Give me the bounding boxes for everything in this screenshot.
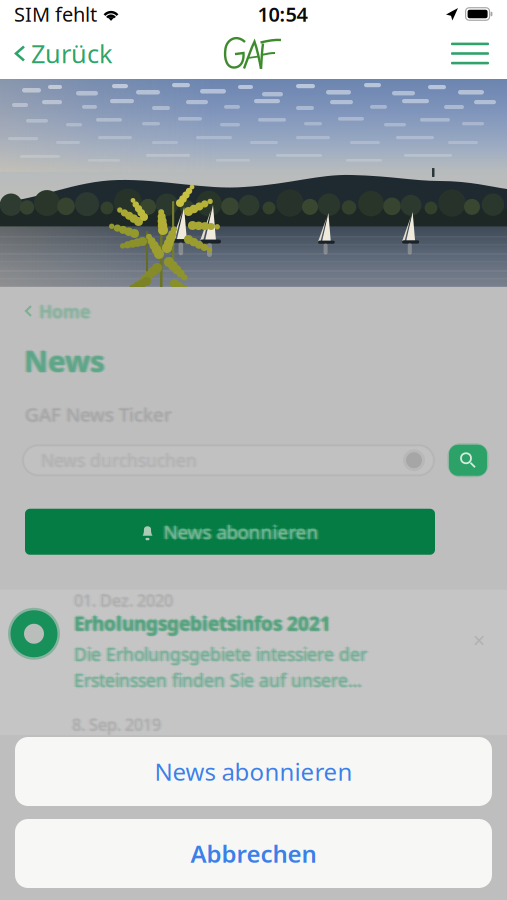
staticText: 8. Sep. 2019 xyxy=(72,713,161,734)
staticText: News durchsuchen xyxy=(41,450,197,473)
staticText: Die Erholungsgebiete intessiere der xyxy=(72,643,365,666)
staticText: Home xyxy=(38,299,89,322)
staticText: News xyxy=(24,341,105,380)
staticText: 8. Sep. 2019 xyxy=(71,713,160,734)
staticText: 01. Dez. 2020 xyxy=(75,591,174,612)
button[interactable]: Zurück xyxy=(0,28,127,79)
button[interactable]: Abbrechen xyxy=(15,819,492,888)
staticText: 01. Dez. 2020 xyxy=(73,589,172,610)
staticText: News abonnieren xyxy=(163,519,318,543)
staticText: News xyxy=(24,340,105,379)
staticText: Home xyxy=(41,300,92,323)
staticText: 8. Sep. 2019 xyxy=(73,715,162,736)
staticText: GAF News Ticker xyxy=(26,402,173,427)
staticText: Die Erholungsgebiete intessiere der xyxy=(74,644,367,667)
staticText: News durchsuchen xyxy=(42,449,198,472)
staticText: News xyxy=(22,341,103,380)
staticText: News abonnieren xyxy=(161,519,316,544)
staticText: Home xyxy=(38,300,89,323)
staticText: Erholungsgebietsinfos 2021 xyxy=(76,611,333,636)
staticText: 01. Dez. 2020 xyxy=(74,590,173,611)
staticText: Erholungsgebietsinfos 2021 xyxy=(75,611,332,636)
staticText: Ersteinssen finden Sie auf unsere… xyxy=(74,669,362,692)
staticText: News xyxy=(25,341,106,380)
staticText: News abonnieren xyxy=(163,519,318,544)
staticText: 8. Sep. 2019 xyxy=(72,714,161,735)
staticText: Erholungsgebietsinfos 2021 xyxy=(74,611,331,636)
staticText: Erholungsgebietsinfos 2021 xyxy=(72,611,329,636)
staticText: 01. Dez. 2020 xyxy=(73,590,172,611)
staticText: News xyxy=(23,341,104,380)
staticText: Zurück xyxy=(31,37,113,70)
staticText: GAF News Ticker xyxy=(27,402,174,427)
staticText: Die Erholungsgebiete intessiere der xyxy=(74,643,367,666)
staticText: 8. Sep. 2019 xyxy=(70,714,159,735)
staticText: GAF News Ticker xyxy=(25,401,172,426)
staticText: × xyxy=(473,626,485,654)
staticText: Ersteinssen finden Sie auf unsere… xyxy=(73,668,361,691)
staticText: News xyxy=(26,341,107,380)
staticText: News durchsuchen xyxy=(40,448,196,471)
staticText: GAF News Ticker xyxy=(24,402,171,427)
staticText: News durchsuchen xyxy=(39,449,195,472)
staticText: News durchsuchen xyxy=(40,449,196,472)
staticText: News xyxy=(25,342,106,381)
staticText: Die Erholungsgebiete intessiere der xyxy=(75,643,368,666)
staticText: News abonnieren xyxy=(163,521,318,545)
staticText: News abonnieren xyxy=(162,519,317,544)
staticText: 8. Sep. 2019 xyxy=(74,714,163,735)
staticText: 8. Sep. 2019 xyxy=(73,714,162,735)
staticText: Erholungsgebietsinfos 2021 xyxy=(73,610,330,635)
staticText: News xyxy=(24,342,105,381)
staticText: 8. Sep. 2019 xyxy=(72,715,161,736)
staticText: News abonnieren xyxy=(164,520,319,545)
staticText: News abonnieren xyxy=(165,519,320,544)
staticText: Ersteinssen finden Sie auf unsere… xyxy=(73,669,361,692)
staticText: 01. Dez. 2020 xyxy=(76,590,175,611)
staticText: SIM fehlt xyxy=(14,1,97,27)
staticText: News durchsuchen xyxy=(41,448,197,471)
staticText: News durchsuchen xyxy=(42,450,198,473)
staticText: Die Erholungsgebiete intessiere der xyxy=(73,642,366,665)
staticText: Ersteinssen finden Sie auf unsere… xyxy=(75,670,363,693)
staticText: Ersteinssen finden Sie auf unsere… xyxy=(74,670,362,693)
staticText: Home xyxy=(39,300,90,323)
staticText: Die Erholungsgebiete intessiere der xyxy=(73,643,366,666)
button[interactable]: Menü xyxy=(433,28,507,79)
staticText: Ersteinssen finden Sie auf unsere… xyxy=(74,668,362,691)
staticText: Die Erholungsgebiete intessiere der xyxy=(74,642,367,665)
staticText: News abonnieren xyxy=(166,519,321,544)
staticText: Erholungsgebietsinfos 2021 xyxy=(73,611,330,636)
staticText: Erholungsgebietsinfos 2021 xyxy=(74,612,331,637)
staticText: 01. Dez. 2020 xyxy=(74,589,173,610)
staticText: News abonnieren xyxy=(154,756,352,787)
staticText: News durchsuchen xyxy=(41,449,197,472)
staticText: News durchsuchen xyxy=(43,449,199,472)
staticText: Home xyxy=(40,300,91,323)
staticText: GAF News Ticker xyxy=(26,403,173,428)
staticText: Ersteinssen finden Sie auf unsere… xyxy=(72,669,360,692)
staticText: Home xyxy=(39,301,90,324)
staticText: 01. Dez. 2020 xyxy=(74,591,173,612)
staticText: Ersteinssen finden Sie auf unsere… xyxy=(76,669,364,692)
staticText: Ersteinssen finden Sie auf unsere… xyxy=(75,669,363,692)
staticText: Home xyxy=(37,300,88,323)
button[interactable]: News abonnieren xyxy=(15,737,492,806)
staticText: Home xyxy=(39,299,90,322)
staticText: 01. Dez. 2020 xyxy=(75,590,174,611)
staticText: GAF News Ticker xyxy=(23,402,170,427)
staticText: 10:54 xyxy=(257,1,307,27)
staticText: GAF News Ticker xyxy=(24,401,171,426)
staticText: Home xyxy=(40,301,91,324)
staticText: 8. Sep. 2019 xyxy=(71,714,160,735)
staticText: Abbrechen xyxy=(190,838,316,869)
staticText: News xyxy=(23,340,104,379)
staticText: Die Erholungsgebiete intessiere der xyxy=(76,643,369,666)
staticText: Die Erholungsgebiete intessiere der xyxy=(75,644,368,667)
staticText: Erholungsgebietsinfos 2021 xyxy=(74,610,331,635)
staticText: 01. Dez. 2020 xyxy=(72,590,171,611)
staticText: GAF News Ticker xyxy=(25,402,172,427)
staticText: Erholungsgebietsinfos 2021 xyxy=(75,612,332,637)
staticText: News abonnieren xyxy=(163,518,318,543)
staticText: GAF News Ticker xyxy=(25,403,172,428)
